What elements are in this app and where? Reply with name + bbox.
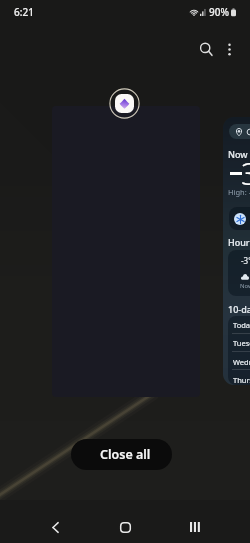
staticText: 3 [241, 152, 250, 194]
button[interactable]: Back [35, 507, 75, 543]
staticText: Close all [100, 446, 151, 463]
button[interactable] [52, 106, 200, 397]
button[interactable]: App icon [109, 88, 140, 119]
staticText: 6:21 [14, 5, 34, 19]
staticText: Thursd [233, 375, 250, 385]
staticText: -3° [241, 255, 250, 266]
staticText: High: -1° [228, 187, 250, 197]
staticText: Hourly f [228, 236, 250, 248]
button[interactable]: Home [105, 507, 145, 543]
staticText: Tuesda [233, 338, 250, 348]
button[interactable]: Search [191, 34, 221, 64]
staticText: 90% [209, 5, 229, 19]
button[interactable]: Recents [175, 507, 215, 543]
staticText: 10-day [228, 303, 250, 315]
staticText: Now [228, 148, 248, 160]
button[interactable]: Close all [71, 439, 172, 470]
staticText: Now [240, 282, 250, 290]
button[interactable]: Now [223, 117, 250, 385]
button[interactable]: More options [214, 34, 244, 64]
staticText: Wedne [233, 357, 250, 367]
staticText: Today [233, 320, 250, 330]
